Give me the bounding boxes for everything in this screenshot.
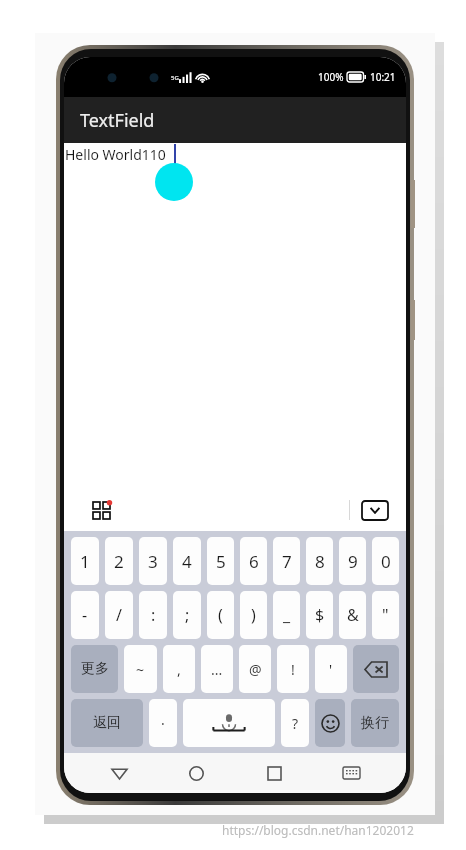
staticText: ~ <box>136 660 145 679</box>
staticText: 5G <box>171 74 179 82</box>
button[interactable]: 9 <box>339 537 366 585</box>
button[interactable]: ; <box>173 591 201 639</box>
button[interactable]: / <box>105 591 133 639</box>
button[interactable]: " <box>372 591 399 639</box>
staticText: 7 <box>282 550 292 573</box>
button[interactable]: 0 <box>372 537 399 585</box>
button[interactable]: 1 <box>71 537 99 585</box>
button[interactable]: , <box>163 645 195 693</box>
button[interactable]: 8 <box>306 537 333 585</box>
button[interactable]: 3 <box>139 537 167 585</box>
staticText: , <box>177 660 181 679</box>
button[interactable]: 返回 <box>71 699 143 747</box>
button[interactable]: Recents <box>252 753 296 793</box>
button[interactable]: 4 <box>173 537 201 585</box>
staticText: · <box>161 714 165 733</box>
staticText: ; <box>185 604 190 626</box>
staticText: " <box>382 604 389 626</box>
button[interactable]: 2 <box>105 537 133 585</box>
button[interactable]: 更多 <box>71 645 118 693</box>
button[interactable]: ? <box>281 699 309 747</box>
button[interactable]: Hello World110 <box>64 143 406 489</box>
staticText: ' <box>329 660 333 679</box>
staticText: 3 <box>148 550 158 573</box>
staticText: 更多 <box>81 660 109 678</box>
staticText: 8 <box>315 550 325 573</box>
staticText: / <box>116 604 122 626</box>
button[interactable]: Keyboard tools <box>86 495 116 525</box>
button[interactable]: 5 <box>207 537 234 585</box>
staticText: & <box>347 604 359 626</box>
staticText: $ <box>315 604 325 626</box>
button[interactable]: Hide keyboard <box>360 498 390 522</box>
staticText: @ <box>249 660 262 679</box>
staticText: 6 <box>249 550 259 573</box>
button[interactable]: ! <box>277 645 309 693</box>
button[interactable]: ) <box>240 591 267 639</box>
button[interactable]: & <box>339 591 366 639</box>
staticText: 5 <box>216 550 226 573</box>
button[interactable]: 换行 <box>351 699 399 747</box>
button[interactable]: space <box>183 699 275 747</box>
staticText: https://blog.csdn.net/han1202012 <box>222 822 414 838</box>
button[interactable]: 6 <box>240 537 267 585</box>
staticText: TextField <box>80 108 155 133</box>
staticText: 1 <box>80 550 90 573</box>
staticText: ( <box>218 604 223 626</box>
button[interactable]: TextField <box>64 97 406 143</box>
staticText: 0 <box>381 550 391 573</box>
button[interactable]: - <box>71 591 99 639</box>
staticText: 9 <box>348 550 358 573</box>
button[interactable]: ... <box>201 645 233 693</box>
button[interactable]: ' <box>315 645 347 693</box>
staticText: ... <box>211 660 223 679</box>
button[interactable]: emoji <box>315 699 345 747</box>
staticText: - <box>82 604 88 626</box>
staticText: ) <box>251 604 256 626</box>
staticText: 4 <box>182 550 192 573</box>
staticText: 100% <box>318 70 344 84</box>
button[interactable]: _ <box>273 591 300 639</box>
button[interactable]: Home <box>174 753 218 793</box>
button[interactable]: Switch keyboard <box>329 753 373 793</box>
button[interactable]: : <box>139 591 167 639</box>
staticText: : <box>151 604 156 626</box>
staticText: 返回 <box>93 714 121 732</box>
button[interactable]: 7 <box>273 537 300 585</box>
button[interactable]: Back <box>97 753 141 793</box>
button[interactable]: @ <box>239 645 271 693</box>
staticText: ? <box>292 714 299 733</box>
staticText: 换行 <box>361 714 389 732</box>
button[interactable]: ( <box>207 591 234 639</box>
button[interactable]: · <box>149 699 177 747</box>
staticText: 10:21 <box>370 70 396 84</box>
button[interactable]: ~ <box>124 645 157 693</box>
staticText: Hello World110 <box>65 145 166 164</box>
button[interactable]: del <box>353 645 399 693</box>
button[interactable]: $ <box>306 591 333 639</box>
staticText: _ <box>283 604 291 626</box>
staticText: ! <box>291 660 295 679</box>
staticText: 2 <box>114 550 124 573</box>
